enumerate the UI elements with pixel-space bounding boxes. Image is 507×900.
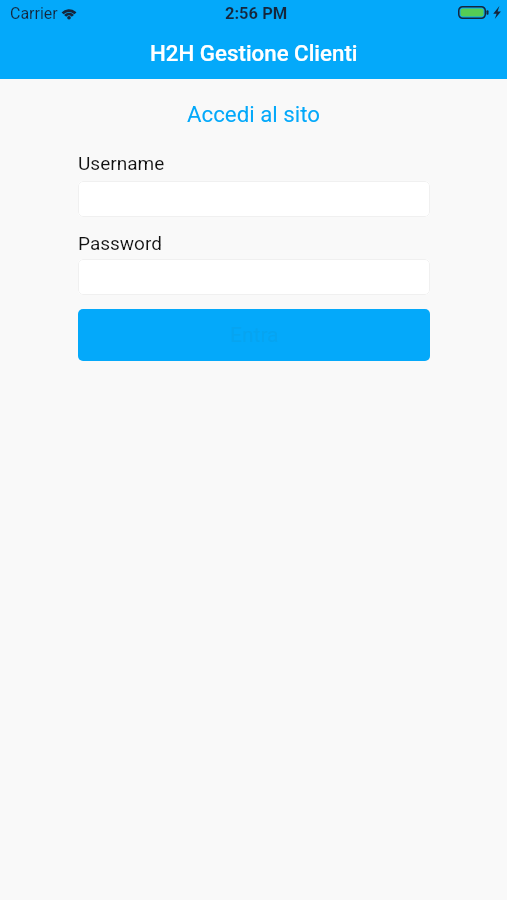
button[interactable]	[78, 259, 430, 295]
button[interactable]: Entra	[78, 309, 430, 361]
staticText: Username	[78, 152, 165, 174]
other: Battery charging	[458, 6, 488, 19]
staticText: Carrier	[10, 4, 58, 23]
staticText: Accedi al sito	[0, 101, 507, 127]
staticText: Password	[78, 232, 162, 254]
button[interactable]	[78, 181, 430, 217]
other: Wi-Fi signal	[60, 6, 78, 19]
staticText: Entra	[230, 323, 279, 348]
staticText: 2:56 PM	[225, 4, 288, 23]
staticText: H2H Gestione Clienti	[150, 40, 358, 66]
